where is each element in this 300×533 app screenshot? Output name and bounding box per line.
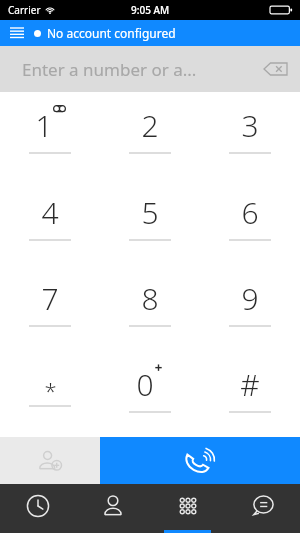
- staticText: 3: [241, 105, 259, 146]
- button[interactable]: Add contact: [0, 437, 100, 484]
- button[interactable]: Contacts: [75, 484, 150, 533]
- button[interactable]: *: [0, 351, 100, 437]
- staticText: No account configured: [47, 25, 176, 41]
- staticText: 8: [141, 278, 159, 319]
- button[interactable]: 0: [100, 351, 200, 437]
- button[interactable]: Menu: [0, 20, 34, 46]
- staticText: 4: [41, 192, 59, 233]
- staticText: 0: [136, 364, 154, 405]
- staticText: 1: [35, 105, 53, 146]
- button[interactable]: #: [200, 351, 300, 437]
- staticText: 7: [41, 278, 59, 319]
- button[interactable]: 7: [0, 265, 100, 351]
- button[interactable]: 6: [200, 179, 300, 265]
- staticText: 2: [141, 105, 159, 146]
- staticText: 9:05 AM: [131, 3, 170, 17]
- button[interactable]: 8: [100, 265, 200, 351]
- button[interactable]: Enter a number or a...: [0, 46, 300, 92]
- button[interactable]: Call: [100, 437, 300, 484]
- button[interactable]: Keypad: [150, 484, 225, 533]
- button[interactable]: Messages: [225, 484, 300, 533]
- button[interactable]: 9: [200, 265, 300, 351]
- button[interactable]: 2: [100, 92, 200, 179]
- staticText: 6: [241, 192, 259, 233]
- staticText: Enter a number or a...: [22, 58, 197, 81]
- button[interactable]: 4: [0, 179, 100, 265]
- button[interactable]: 1: [0, 92, 100, 179]
- button[interactable]: 5: [100, 179, 200, 265]
- staticText: 5: [141, 192, 159, 233]
- staticText: *: [44, 375, 57, 405]
- button[interactable]: 3: [200, 92, 300, 179]
- staticText: #: [240, 364, 260, 405]
- staticText: 9: [241, 278, 259, 319]
- button[interactable]: Recents: [0, 484, 75, 533]
- button[interactable]: Backspace: [252, 46, 300, 92]
- staticText: Carrier: [8, 3, 41, 17]
